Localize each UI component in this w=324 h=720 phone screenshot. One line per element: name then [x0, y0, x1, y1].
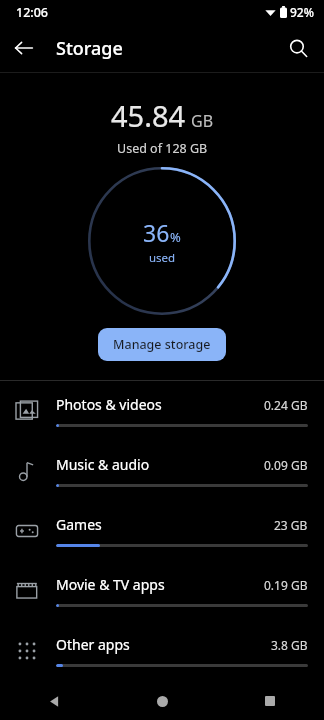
button[interactable]: Manage storage	[98, 328, 226, 361]
button[interactable]: Photos & videos	[0, 381, 324, 441]
button[interactable]: Music & audio	[0, 441, 324, 501]
staticText: 92%	[290, 4, 314, 20]
staticText: Music & audio	[56, 455, 150, 474]
staticText: 0.19 GB	[264, 577, 308, 593]
staticText: 36	[143, 217, 170, 248]
staticText: 3.8 GB	[271, 637, 308, 653]
staticText: %	[170, 228, 181, 246]
staticText: 0.09 GB	[264, 457, 308, 473]
staticText: Manage storage	[113, 336, 211, 353]
staticText: 45.84	[111, 96, 186, 135]
staticText: GB	[191, 110, 214, 132]
button[interactable]: Home	[108, 682, 216, 720]
button[interactable]: Games	[0, 501, 324, 561]
staticText: 23 GB	[274, 517, 308, 533]
staticText: Movie & TV apps	[56, 575, 165, 594]
staticText: Games	[56, 515, 102, 534]
button[interactable]: Back	[0, 682, 108, 720]
staticText: Other apps	[56, 635, 130, 654]
staticText: Used of 128 GB	[117, 140, 208, 157]
button[interactable]: Movie & TV apps	[0, 561, 324, 621]
staticText: Storage	[56, 36, 123, 61]
button[interactable]: Recent apps	[216, 682, 324, 720]
button[interactable]: Search	[280, 30, 316, 66]
button[interactable]: Back	[6, 30, 42, 66]
staticText: 0.24 GB	[264, 397, 308, 413]
button[interactable]: Other apps	[0, 621, 324, 681]
staticText: 12:06	[16, 4, 49, 21]
staticText: Photos & videos	[56, 395, 162, 414]
staticText: used	[149, 250, 176, 266]
